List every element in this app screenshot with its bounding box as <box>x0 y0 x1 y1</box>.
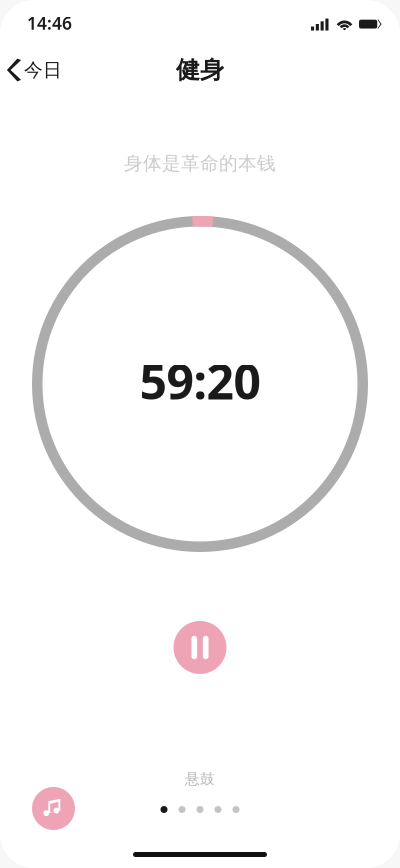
button[interactable]: 今日 <box>0 46 74 94</box>
button[interactable]: Pause <box>173 621 226 674</box>
staticText: 59:20 <box>139 349 260 413</box>
staticText: 身体是革命的本钱 <box>124 152 276 175</box>
button[interactable]: Music <box>32 787 75 830</box>
staticText: 14:46 <box>27 11 72 34</box>
staticText: 悬鼓 <box>185 770 215 788</box>
staticText: 健身 <box>176 55 224 85</box>
staticText: 今日 <box>24 58 62 81</box>
